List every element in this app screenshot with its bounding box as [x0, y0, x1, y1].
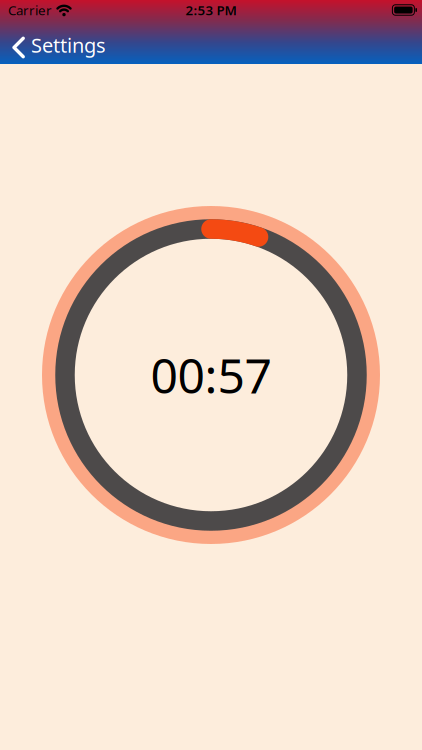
staticText: 2:53 PM [185, 1, 236, 19]
staticText: 00:57 [150, 343, 271, 407]
staticText: Carrier [8, 1, 52, 19]
staticText: Settings [31, 32, 106, 58]
button[interactable]: Settings [0, 32, 106, 58]
